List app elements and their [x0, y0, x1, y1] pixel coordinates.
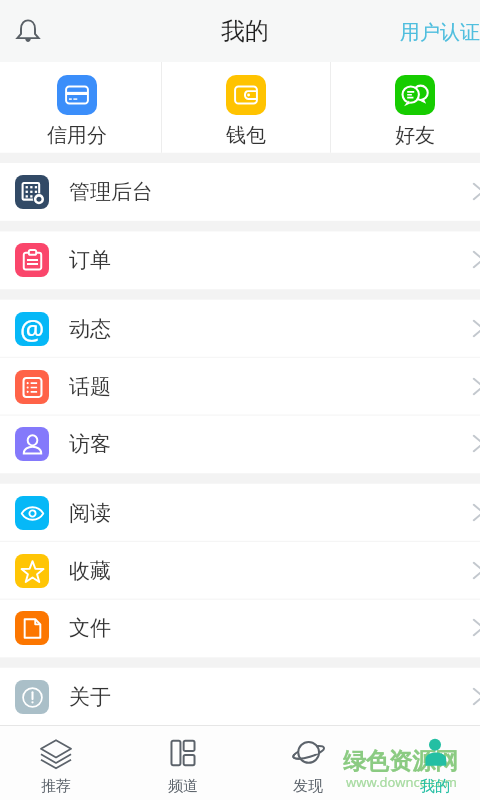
staticText: 钱包 [201, 123, 291, 148]
staticText: 我的 [221, 16, 269, 46]
staticText: 收藏 [69, 558, 111, 584]
staticText: 频道 [138, 777, 228, 796]
staticText: 话题 [69, 374, 111, 400]
button[interactable]: 好友 [331, 62, 480, 153]
button[interactable]: 订单 [0, 231, 480, 289]
staticText: 发现 [263, 777, 353, 796]
button[interactable]: @ [0, 300, 480, 358]
button[interactable]: 阅读 [0, 484, 480, 542]
staticText: 用户认证 [400, 20, 480, 45]
staticText: 管理后台 [69, 179, 153, 205]
button[interactable]: 发现 [263, 726, 353, 800]
staticText: 好友 [370, 123, 460, 148]
staticText: 文件 [69, 615, 111, 641]
staticText: 我的 [390, 777, 480, 796]
button[interactable]: 频道 [138, 726, 228, 800]
staticText: www.downce.com [346, 773, 457, 791]
button[interactable]: 访客 [0, 415, 480, 473]
staticText: 订单 [69, 247, 111, 273]
button[interactable]: 用户认证 [400, 20, 480, 45]
button[interactable]: 关于 [0, 668, 480, 726]
staticText: @ [20, 312, 45, 345]
staticText: 信用分 [32, 123, 122, 148]
staticText: 动态 [69, 316, 111, 342]
button[interactable]: 管理后台 [0, 163, 480, 221]
button[interactable]: 钱包 [162, 62, 330, 153]
button[interactable]: 推荐 [11, 726, 101, 800]
button[interactable]: 信用分 [0, 62, 161, 153]
button[interactable]: 我的 [390, 726, 480, 800]
staticText: 阅读 [69, 500, 111, 526]
button[interactable]: Notifications [4, 7, 52, 55]
staticText: 推荐 [11, 777, 101, 796]
button[interactable]: 收藏 [0, 542, 480, 600]
button[interactable]: 文件 [0, 599, 480, 657]
button[interactable]: 话题 [0, 358, 480, 416]
staticText: 绿色资源网 [343, 747, 458, 776]
staticText: 关于 [69, 684, 111, 710]
staticText: 访客 [69, 431, 111, 457]
